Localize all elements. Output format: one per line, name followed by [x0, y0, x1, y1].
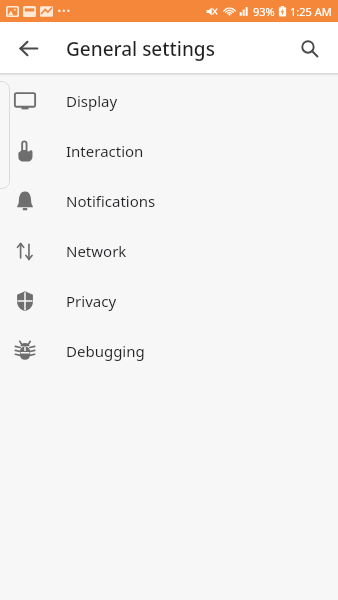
staticText: 93%	[253, 4, 275, 19]
staticText: 1:25 AM	[290, 4, 332, 19]
staticText: Debugging	[66, 341, 145, 361]
button[interactable]: Debugging	[0, 326, 338, 376]
staticText: Notifications	[66, 191, 156, 211]
button[interactable]: Search	[289, 28, 329, 68]
button[interactable]: Back	[8, 28, 48, 68]
staticText: Network	[66, 241, 127, 261]
button[interactable]: Interaction	[0, 126, 338, 176]
staticText: Privacy	[66, 291, 117, 311]
staticText: • • •	[58, 7, 70, 17]
staticText: Display	[66, 91, 118, 111]
button[interactable]: Notifications	[0, 176, 338, 226]
button[interactable]: Display	[0, 76, 338, 126]
staticText: Interaction	[66, 141, 144, 161]
button[interactable]: Privacy	[0, 276, 338, 326]
button[interactable]: Network	[0, 226, 338, 276]
staticText: General settings	[66, 36, 215, 62]
